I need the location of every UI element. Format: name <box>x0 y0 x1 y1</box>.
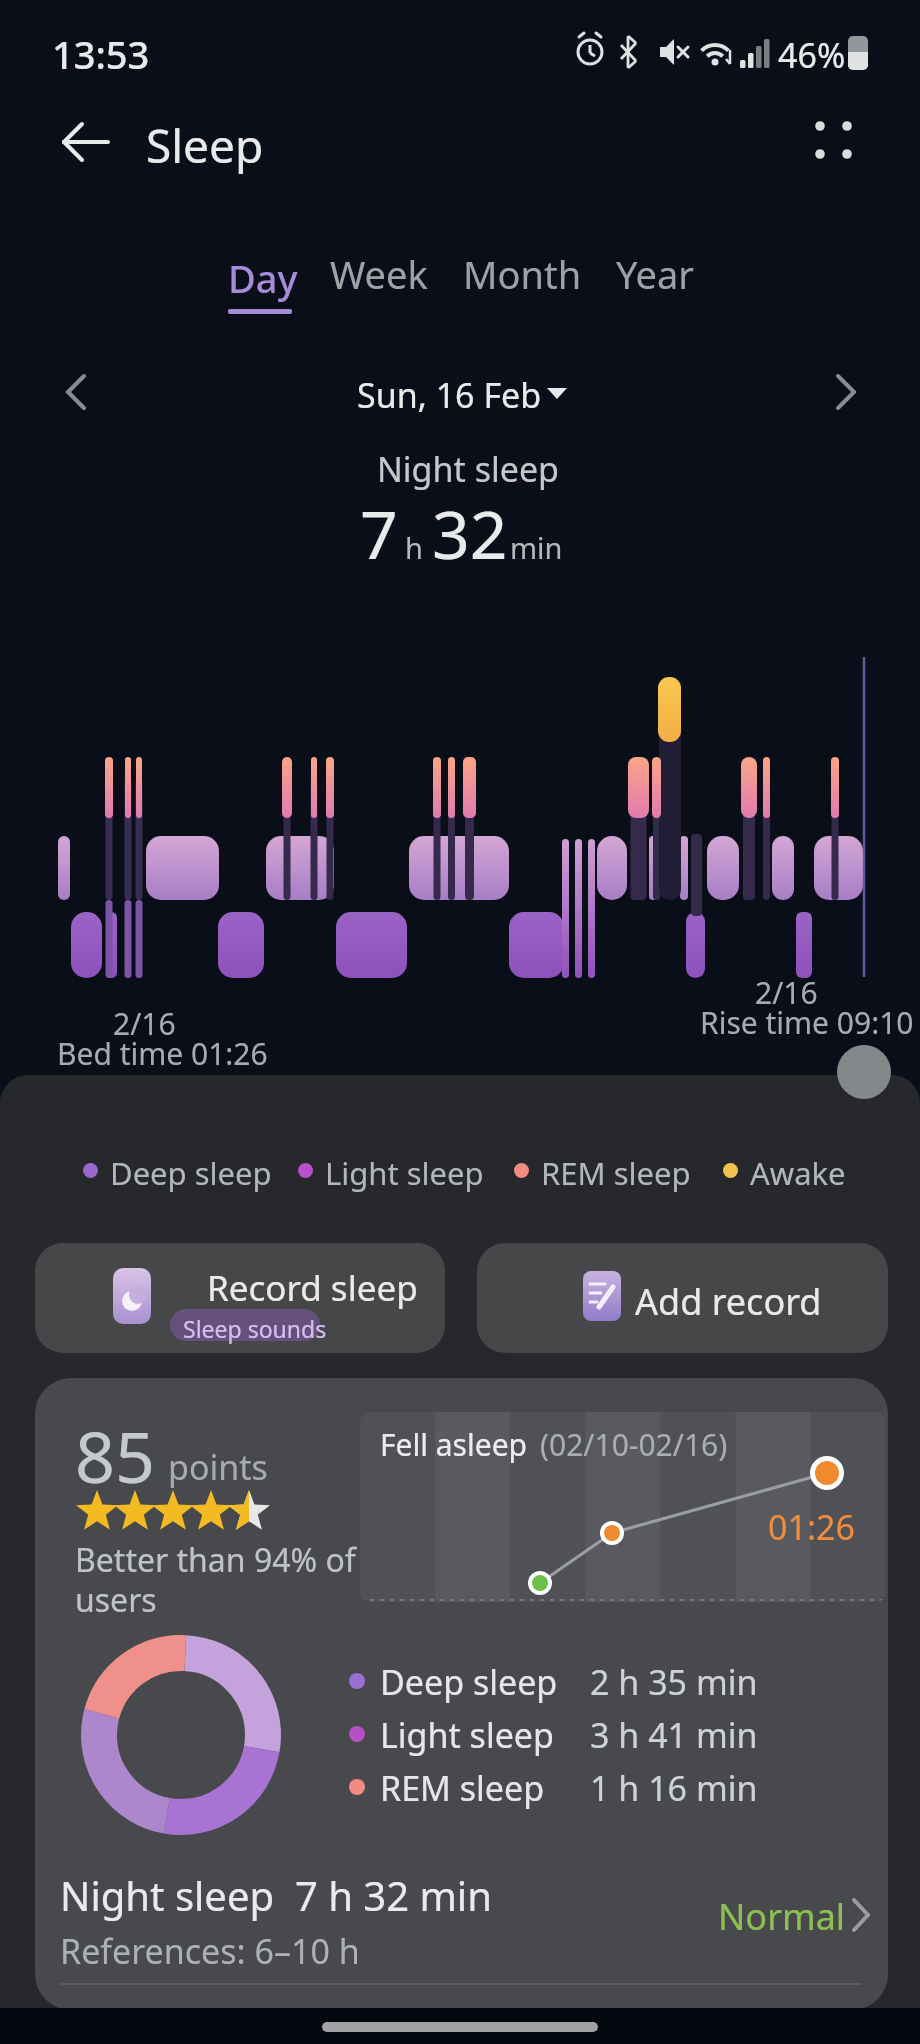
button[interactable] <box>56 370 100 414</box>
staticText: 7 <box>360 488 398 578</box>
staticText: Year <box>616 248 695 300</box>
staticText: Light sleep <box>325 1152 484 1194</box>
staticText: Add record <box>635 1277 822 1326</box>
staticText: REM sleep <box>541 1152 691 1194</box>
staticText: REM sleep <box>380 1765 545 1811</box>
button[interactable]: Month <box>463 248 603 308</box>
staticText: References: 6–10 h <box>60 1928 360 1974</box>
staticText: min <box>510 528 563 567</box>
staticText: Fell asleep <box>380 1424 527 1465</box>
staticText: 2/16 <box>755 972 818 1013</box>
staticText: Deep sleep <box>380 1659 558 1705</box>
staticText: 1 h 16 min <box>590 1765 758 1811</box>
staticText: Awake <box>750 1152 846 1194</box>
staticText: (02/10-02/16) <box>540 1424 728 1465</box>
staticText: Sleep <box>146 114 264 177</box>
staticText: 01:26 <box>768 1504 855 1550</box>
button[interactable] <box>58 116 114 168</box>
staticText: 3 h 41 min <box>590 1712 758 1758</box>
staticText: Normal <box>718 1892 846 1941</box>
button[interactable]: Add record <box>477 1243 888 1353</box>
staticText: 2 h 35 min <box>590 1659 758 1705</box>
staticText: Better than 94% of <box>75 1538 356 1582</box>
staticText: Sun, 16 Feb <box>357 372 542 418</box>
button[interactable] <box>806 112 862 168</box>
staticText: 85 <box>75 1408 156 1503</box>
button[interactable] <box>837 1045 891 1099</box>
button[interactable]: Record sleep <box>35 1243 445 1353</box>
button[interactable] <box>685 1883 885 1943</box>
button[interactable]: Week <box>330 248 450 308</box>
staticText: Week <box>330 248 428 300</box>
staticText: Night sleep <box>377 446 559 492</box>
staticText: Sleep sounds <box>183 1313 327 1344</box>
staticText: Day <box>228 252 298 304</box>
button[interactable] <box>822 370 866 414</box>
staticText: Deep sleep <box>110 1152 272 1194</box>
staticText: Record sleep <box>207 1264 418 1312</box>
button[interactable]: 85 <box>35 1378 888 2010</box>
staticText: 46% <box>778 32 846 78</box>
staticText: points <box>168 1444 268 1490</box>
staticText: Light sleep <box>380 1712 554 1758</box>
staticText: 2/16 <box>113 1003 176 1044</box>
button[interactable]: Year <box>616 248 716 308</box>
staticText: Bed time 01:26 <box>57 1033 268 1074</box>
staticText: Rise time 09:10 <box>700 1002 914 1043</box>
staticText: users <box>75 1578 157 1622</box>
staticText: 32 <box>432 488 508 578</box>
staticText: h <box>405 528 423 567</box>
button[interactable] <box>228 248 294 320</box>
button[interactable] <box>350 368 570 416</box>
staticText: 13:53 <box>52 28 150 80</box>
staticText: Month <box>463 248 582 300</box>
staticText: Night sleep 7 h 32 min <box>60 1868 492 1922</box>
